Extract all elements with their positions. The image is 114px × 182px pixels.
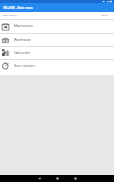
button[interactable]: Warehouse — [0, 33, 114, 46]
staticText: Sales order — [14, 51, 31, 55]
button[interactable]: Home — [54, 175, 61, 182]
button[interactable]: Recent apps — [72, 175, 79, 182]
staticText: Hour counters — [14, 64, 35, 68]
button[interactable]: Back — [36, 175, 43, 182]
button[interactable]: Hour counters — [0, 59, 114, 72]
button[interactable]: Maintenance — [0, 19, 114, 33]
staticText: VM-4000 - Main menu — [3, 6, 34, 10]
staticText: Warehouse — [14, 38, 31, 42]
staticText: Peter Petersen — [3, 14, 17, 17]
button[interactable]: Sales order — [0, 46, 114, 59]
staticText: Maintenance — [14, 24, 33, 28]
staticText: Log out — [101, 14, 109, 17]
